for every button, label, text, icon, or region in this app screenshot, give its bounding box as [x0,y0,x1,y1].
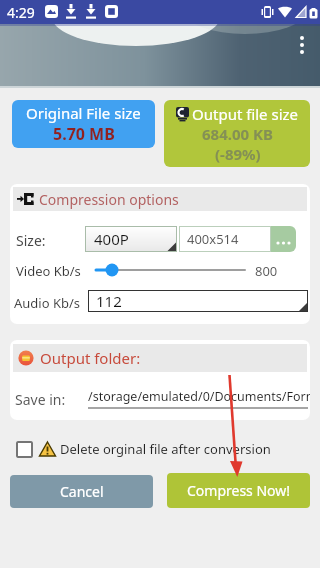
staticText: Save in: [15,390,66,409]
staticText: 684.00 KB [202,124,273,144]
staticText: Delete orginal file after conversion [60,440,271,458]
staticText: Output folder: [40,348,141,368]
staticText: 4:29 [7,3,35,22]
staticText: Compress Now! [187,481,291,500]
staticText: 5.70 MB [53,123,115,145]
staticText: Cancel [60,482,104,501]
staticText: Audio Kb/s [14,294,81,312]
button[interactable]: 400x514 [179,226,271,252]
staticText: Video Kb/s [16,262,81,280]
button[interactable]: Cancel [10,475,153,508]
staticText: Size: [16,231,46,250]
button[interactable]: Compress Now! [167,473,310,508]
button[interactable] [292,31,312,61]
staticText: 400x514 [187,230,239,248]
staticText: 112 [96,291,122,311]
staticText: Original File size [26,103,141,123]
button[interactable]: Delete orginal file after conversion [16,436,271,462]
staticText: /storage/emulated/0/Documents/FormatF [88,388,310,405]
button[interactable]: 112 [88,290,308,312]
staticText: 400P [94,229,129,249]
staticText: 800 [255,262,278,280]
button[interactable]: Original File size [12,100,155,148]
staticText: Compression options [39,190,179,209]
button[interactable]: Output file size [164,100,310,167]
button[interactable]: 400P [85,226,177,252]
staticText: (-89%) [215,144,261,164]
button[interactable]: /storage/emulated/0/Documents/FormatF [88,384,310,408]
staticText: Output file size [192,104,299,124]
button[interactable] [271,226,296,252]
